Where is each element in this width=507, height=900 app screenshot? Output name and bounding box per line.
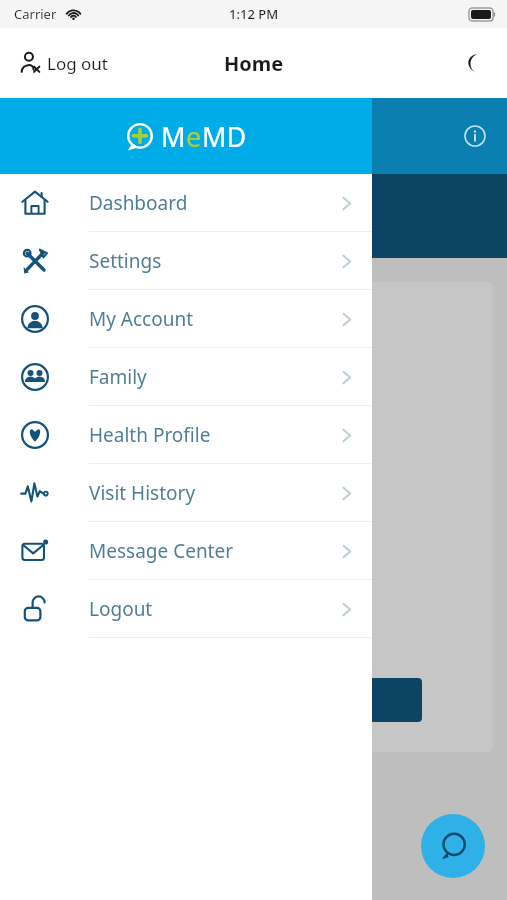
button[interactable]: Health Profile (0, 406, 372, 464)
staticText: Message Center (89, 538, 234, 564)
button[interactable]: Settings (0, 232, 372, 290)
staticText: Home (224, 50, 284, 77)
staticText: Logout (89, 596, 153, 622)
button[interactable]: Dark mode (451, 43, 491, 83)
button[interactable]: Family (0, 348, 372, 406)
button[interactable] (352, 678, 422, 722)
staticText: Carrier (14, 5, 57, 23)
button[interactable]: My Account (0, 290, 372, 348)
button[interactable]: Logout (0, 580, 372, 638)
button[interactable]: Visit History (0, 464, 372, 522)
staticText: My Account (89, 306, 194, 332)
staticText: MD (202, 118, 247, 155)
button[interactable]: Log out (18, 50, 108, 76)
staticText: Visit History (89, 480, 196, 506)
button[interactable]: Chat (421, 814, 485, 878)
staticText: Log out (47, 52, 108, 75)
staticText: e (186, 118, 202, 155)
button[interactable]: Information (457, 118, 493, 154)
staticText: Health Profile (89, 422, 211, 448)
staticText: 1:12 PM (229, 5, 279, 23)
button[interactable]: Dashboard (0, 174, 372, 232)
button[interactable]: Message Center (0, 522, 372, 580)
staticText: Settings (89, 248, 162, 274)
staticText: Family (89, 364, 147, 390)
staticText: M (161, 118, 186, 155)
staticText: Dashboard (89, 190, 188, 216)
